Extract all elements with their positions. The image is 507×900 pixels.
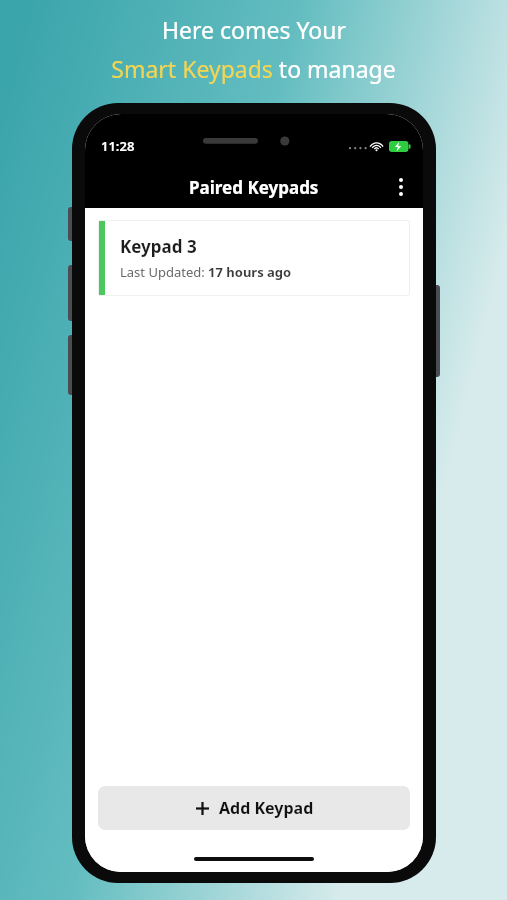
- staticText: Last Updated: 17 hours ago: [120, 263, 292, 281]
- button[interactable]: Keypad 3: [98, 220, 410, 296]
- staticText: 11:28: [101, 137, 135, 155]
- button[interactable]: Add Keypad: [98, 786, 410, 830]
- staticText: Keypad 3: [120, 235, 197, 258]
- button[interactable]: More options: [383, 169, 419, 205]
- staticText: Add Keypad: [219, 797, 314, 819]
- staticText: Smart Keypads to manage: [111, 53, 396, 84]
- staticText: Here comes Your: [162, 14, 346, 45]
- staticText: Paired Keypads: [189, 176, 319, 199]
